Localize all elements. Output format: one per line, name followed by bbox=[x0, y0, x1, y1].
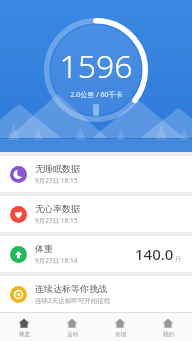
staticText: 无睡眠数据 bbox=[35, 163, 80, 174]
staticText: 140.0 bbox=[135, 244, 174, 264]
button[interactable]: 发现 bbox=[96, 313, 144, 341]
staticText: 发现 bbox=[115, 331, 126, 338]
button[interactable]: 状态 bbox=[0, 313, 48, 341]
staticText: 2.0公里 / 60千卡 bbox=[70, 90, 123, 100]
staticText: 我的 bbox=[163, 331, 174, 338]
button[interactable]: 连续达标等你挑战 bbox=[0, 276, 192, 312]
staticText: 9月27日 18:15 bbox=[35, 176, 78, 185]
button[interactable]: 无心率数据 bbox=[0, 196, 192, 232]
staticText: 运动 bbox=[67, 331, 78, 338]
other: 设备电量 bbox=[93, 104, 99, 116]
staticText: 斤 bbox=[175, 255, 182, 263]
staticText: 1596 bbox=[59, 44, 133, 88]
staticText: 9月27日 18:14 bbox=[35, 256, 78, 265]
staticText: 状态 bbox=[19, 331, 30, 338]
button[interactable]: 无睡眠数据 bbox=[0, 156, 192, 192]
staticText: 9月27日 18:15 bbox=[35, 216, 78, 225]
staticText: 连续达标等你挑战 bbox=[35, 283, 107, 294]
button[interactable]: 运动 bbox=[48, 313, 96, 341]
staticText: 体重 bbox=[35, 243, 53, 254]
button[interactable]: 我的 bbox=[144, 313, 192, 341]
staticText: 无心率数据 bbox=[35, 203, 80, 214]
button[interactable]: 体重 bbox=[0, 236, 192, 272]
staticText: 连续2天达标即可开始征程 bbox=[35, 296, 111, 305]
